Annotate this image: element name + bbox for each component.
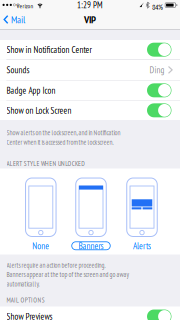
staticText: Badge App Icon bbox=[6, 85, 55, 96]
staticText: Show on Lock Screen bbox=[6, 105, 71, 116]
button[interactable]: Back to Mail bbox=[0, 10, 25, 29]
button[interactable]: Show in Notification Center bbox=[0, 40, 180, 59]
staticText: Ding bbox=[149, 64, 164, 76]
staticText: Verizon bbox=[16, 2, 33, 10]
staticText: Alerts bbox=[133, 240, 151, 252]
button[interactable]: Toggle bbox=[147, 309, 171, 320]
staticText: Alerts require an action before proceedi… bbox=[6, 261, 129, 288]
button[interactable]: Toggle bbox=[147, 103, 171, 117]
button[interactable]: Toggle bbox=[147, 43, 171, 57]
staticText: VIP bbox=[84, 13, 96, 26]
staticText: Banners bbox=[78, 240, 103, 252]
button[interactable]: Badge App Icon bbox=[0, 81, 180, 100]
staticText: Show alerts on the lock screen, and in N… bbox=[6, 128, 120, 146]
button[interactable]: Alerts bbox=[120, 178, 164, 250]
staticText: None bbox=[32, 240, 49, 252]
staticText: Show Previews bbox=[6, 311, 52, 320]
staticText: 84% bbox=[152, 2, 163, 12]
button[interactable]: Toggle bbox=[147, 83, 171, 97]
button[interactable]: Banners bbox=[69, 178, 113, 250]
button[interactable]: Show Previews bbox=[0, 306, 180, 320]
staticText: ALERT STYLE WHEN UNLOCKED bbox=[6, 159, 85, 168]
button[interactable]: Show on Lock Screen bbox=[0, 101, 180, 120]
staticText: MAIL OPTIONS bbox=[6, 296, 45, 304]
staticText: Mail bbox=[11, 13, 25, 26]
staticText: 1:29 PM bbox=[77, 0, 103, 11]
button[interactable]: Sounds bbox=[0, 60, 180, 80]
staticText: Show in Notification Center bbox=[6, 44, 91, 55]
staticText: Sounds bbox=[6, 64, 29, 76]
button[interactable]: None bbox=[19, 178, 63, 250]
